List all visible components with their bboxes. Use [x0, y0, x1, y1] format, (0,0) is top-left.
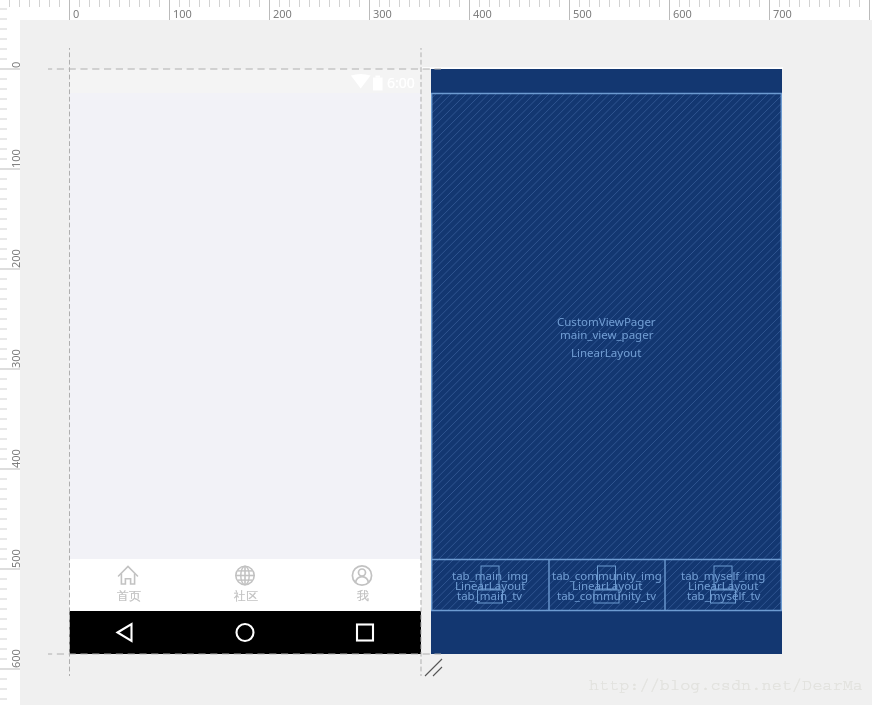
- staticText: tab_myself_img: [681, 568, 766, 584]
- staticText: LinearLayout: [572, 578, 643, 594]
- staticText: 100: [173, 6, 192, 21]
- staticText: 400: [8, 449, 23, 468]
- staticText: LinearLayout: [455, 578, 526, 594]
- staticText: tab_community_img: [552, 568, 662, 584]
- staticText: tab_community_tv: [557, 588, 657, 604]
- button[interactable]: tab_myself_img: [665, 559, 782, 611]
- staticText: 首页: [117, 588, 141, 603]
- staticText: tab_myself_tv: [687, 588, 761, 604]
- staticText: 700: [773, 6, 792, 21]
- button[interactable]: 我: [304, 559, 421, 611]
- staticText: 500: [573, 6, 592, 21]
- staticText: 0: [73, 6, 80, 21]
- staticText: 社区: [234, 588, 258, 603]
- staticText: CustomViewPager: [557, 314, 656, 330]
- staticText: 300: [8, 349, 23, 368]
- staticText: 300: [373, 6, 392, 21]
- staticText: 6:00: [387, 73, 415, 92]
- staticText: 600: [8, 649, 23, 668]
- button[interactable]: Recents: [304, 611, 422, 654]
- staticText: LinearLayout: [571, 345, 642, 361]
- staticText: 我: [357, 588, 369, 603]
- button[interactable]: Home: [187, 611, 304, 654]
- button[interactable]: tab_community_img: [549, 559, 665, 611]
- staticText: 200: [8, 249, 23, 268]
- staticText: tab_main_tv: [457, 588, 523, 604]
- staticText: main_view_pager: [560, 327, 654, 343]
- button[interactable]: Back: [70, 611, 187, 654]
- button[interactable]: tab_main_img: [431, 559, 549, 611]
- button[interactable]: 社区: [187, 559, 304, 611]
- staticText: http://blog.csdn.net/DearMa: [589, 676, 864, 694]
- staticText: 600: [673, 6, 692, 21]
- staticText: 100: [8, 149, 23, 168]
- staticText: 0: [8, 61, 23, 68]
- staticText: LinearLayout: [688, 578, 759, 594]
- staticText: 400: [473, 6, 492, 21]
- staticText: 500: [8, 549, 23, 568]
- staticText: tab_main_img: [452, 568, 528, 584]
- staticText: 200: [273, 6, 292, 21]
- button[interactable]: 首页: [70, 559, 187, 611]
